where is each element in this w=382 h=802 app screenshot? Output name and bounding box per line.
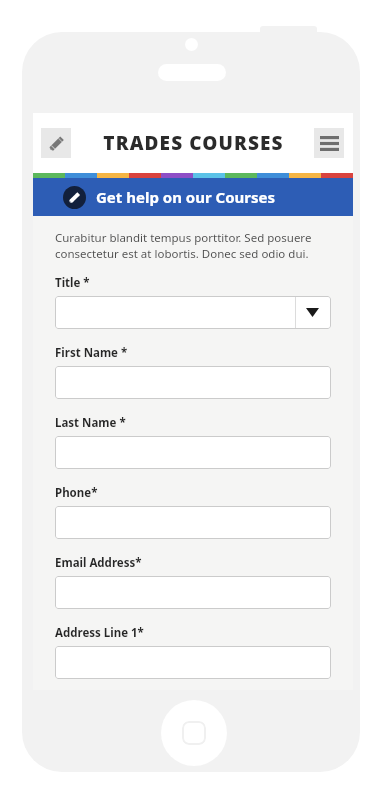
staticText: Last Name * [55, 415, 126, 431]
staticText: Get help on our Courses [96, 187, 276, 207]
staticText: First Name * [55, 345, 128, 361]
button[interactable] [55, 576, 331, 609]
staticText: Email Address* [55, 555, 142, 571]
button[interactable] [55, 366, 331, 399]
button[interactable]: Title dropdown [55, 296, 331, 329]
button[interactable] [55, 436, 331, 469]
button[interactable]: Menu [314, 128, 344, 158]
staticText: TRADES COURSES [103, 130, 284, 156]
button[interactable]: Edit [41, 128, 71, 158]
staticText: Phone* [55, 485, 98, 501]
staticText: Address Line 1* [55, 625, 144, 641]
staticText: Curabitur blandit tempus porttitor. Sed … [55, 230, 331, 261]
button[interactable]: Get help on our Courses [33, 178, 353, 216]
button[interactable] [55, 646, 331, 679]
staticText: Title * [55, 275, 90, 291]
button[interactable] [55, 506, 331, 539]
